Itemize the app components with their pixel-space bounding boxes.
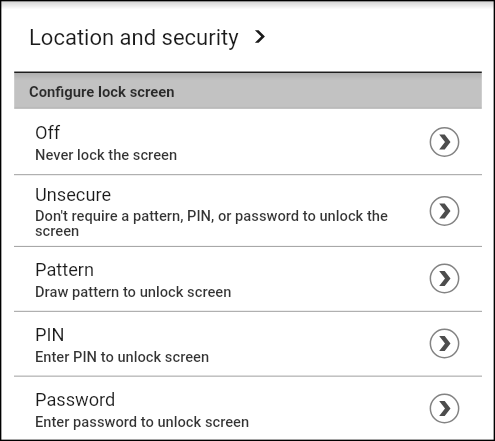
staticText: Password [35, 389, 116, 410]
staticText: Configure lock screen [29, 83, 175, 100]
staticText: Never lock the screen [35, 146, 421, 163]
button[interactable]: Pattern [0, 246, 495, 311]
staticText: Off [35, 122, 61, 143]
button[interactable]: Location and security [14, 2, 274, 71]
button[interactable]: PIN [0, 311, 495, 376]
staticText: Don't require a pattern, PIN, or passwor… [35, 207, 421, 239]
staticText: Enter PIN to unlock screen [35, 348, 421, 365]
staticText: Unsecure [35, 184, 112, 205]
staticText: Draw pattern to unlock screen [35, 283, 421, 300]
staticText: Location and security [29, 25, 239, 51]
staticText: Enter password to unlock screen [35, 413, 421, 430]
staticText: Pattern [35, 259, 95, 280]
button[interactable]: Off [0, 109, 495, 175]
other: Open breadcrumb [252, 29, 268, 45]
staticText: PIN [35, 324, 65, 345]
button[interactable]: Unsecure [0, 175, 495, 247]
button[interactable]: Password [0, 376, 495, 441]
